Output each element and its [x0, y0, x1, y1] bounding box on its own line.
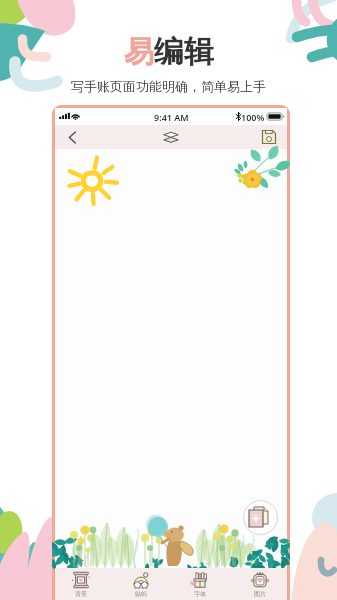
staticText: 9:41 AM	[154, 111, 189, 123]
staticText: 编辑	[154, 33, 214, 71]
staticText: 易	[124, 33, 154, 71]
button[interactable]: 贴纸	[118, 568, 164, 598]
button[interactable]: Back	[61, 126, 83, 148]
button[interactable]: Layers	[160, 126, 182, 148]
button[interactable]: 字体	[177, 568, 223, 598]
staticText: 字体	[194, 590, 206, 598]
staticText: 贴纸	[135, 590, 147, 598]
button[interactable]: 图片	[237, 568, 283, 598]
button[interactable]: 背景	[58, 568, 104, 598]
button[interactable]: Save	[258, 126, 280, 148]
staticText: 图片	[254, 590, 266, 598]
staticText: 写手账页面功能明确，简单易上手	[71, 78, 266, 94]
staticText: 背景	[75, 590, 87, 598]
button[interactable]: Add page	[243, 500, 278, 535]
staticText: 100%	[241, 111, 265, 123]
